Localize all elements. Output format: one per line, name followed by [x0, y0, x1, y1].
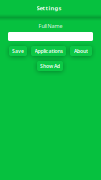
staticText: About — [74, 47, 88, 54]
staticText: Show Ad — [40, 62, 60, 69]
staticText: Settings — [36, 4, 61, 12]
button[interactable]: About — [70, 46, 92, 56]
button[interactable]: Applications — [31, 46, 66, 56]
button[interactable]: Save — [9, 46, 27, 56]
staticText: Full Name — [38, 22, 62, 30]
button[interactable]: Show Ad — [37, 61, 63, 71]
staticText: Applications — [34, 47, 62, 54]
staticText: Save — [12, 47, 24, 54]
